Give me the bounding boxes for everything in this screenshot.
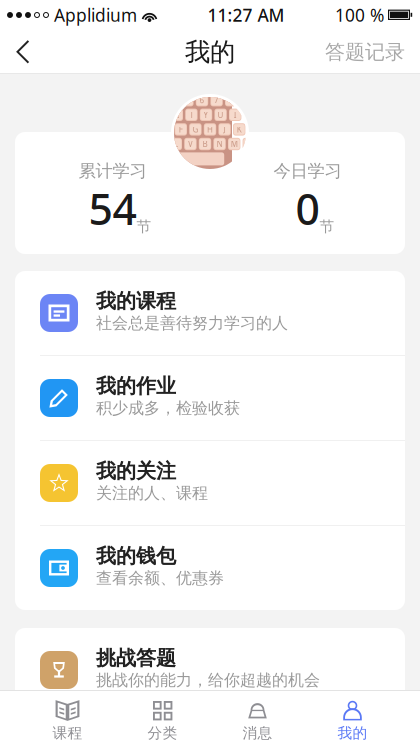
staticText: V: [188, 139, 193, 149]
staticText: 答题记录: [325, 40, 405, 64]
staticText: Y: [203, 109, 208, 120]
staticText: Applidium: [54, 3, 137, 26]
staticText: U: [218, 109, 224, 120]
button[interactable]: 我的课程: [15, 271, 405, 355]
staticText: 分类: [147, 724, 177, 742]
staticText: 11:27 AM: [207, 3, 284, 26]
staticText: 我的: [337, 724, 367, 742]
staticText: 挑战你的能力，给你超越的机会: [96, 670, 320, 690]
button[interactable]: 挑战答题: [15, 628, 405, 712]
button[interactable]: 消息: [210, 690, 305, 747]
staticText: K: [237, 124, 242, 135]
staticText: 5: [185, 95, 190, 105]
staticText: 查看余额、优惠券: [96, 568, 224, 588]
staticText: 100 %: [335, 3, 384, 26]
button[interactable]: Back: [0, 30, 46, 74]
staticText: 我的作业: [96, 374, 176, 398]
staticText: 累计学习: [78, 160, 146, 182]
staticText: L: [252, 124, 256, 135]
staticText: G: [192, 124, 198, 135]
staticText: C: [173, 139, 178, 149]
staticText: 积少成多，检验收获: [96, 398, 240, 418]
staticText: 我的课程: [96, 289, 176, 313]
staticText: 课程: [52, 724, 82, 742]
button[interactable]: 我的钱包: [15, 526, 405, 610]
staticText: I: [234, 109, 237, 120]
staticText: 我的: [185, 36, 235, 67]
staticText: H: [207, 124, 213, 135]
staticText: 8: [229, 95, 234, 105]
staticText: 节: [136, 218, 151, 236]
staticText: 7: [214, 95, 219, 105]
button[interactable]: 我的关注: [15, 441, 405, 525]
staticText: D: [163, 124, 169, 135]
staticText: 今日学习: [273, 160, 341, 182]
staticText: 关注的人、课程: [96, 483, 208, 503]
staticText: F: [179, 124, 183, 135]
staticText: 0: [295, 180, 319, 237]
staticText: 6: [199, 95, 204, 105]
staticText: 消息: [242, 724, 272, 742]
staticText: 我的钱包: [96, 544, 176, 568]
button[interactable]: 我的作业: [15, 356, 405, 440]
staticText: 挑战答题: [96, 646, 176, 670]
staticText: 我的关注: [96, 459, 176, 483]
staticText: 节: [319, 218, 334, 236]
staticText: J: [224, 124, 226, 135]
staticText: 社会总是善待努力学习的人: [96, 313, 288, 333]
staticText: 54: [88, 180, 136, 237]
button[interactable]: 我的: [305, 690, 400, 747]
button[interactable]: 答题记录: [313, 30, 420, 74]
staticText: R: [174, 109, 179, 120]
staticText: T: [189, 109, 193, 120]
staticText: N: [217, 139, 223, 149]
staticText: M: [231, 139, 238, 149]
button[interactable]: 分类: [115, 690, 210, 747]
staticText: B: [202, 139, 207, 149]
button[interactable]: 课程: [20, 690, 115, 747]
